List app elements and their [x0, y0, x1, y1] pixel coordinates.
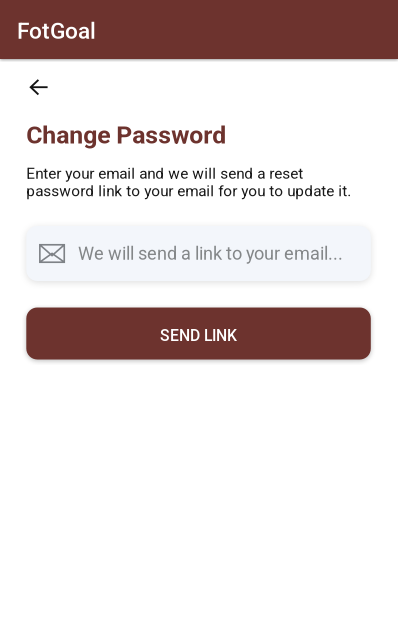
staticText: Enter your email and we will send a rese… [26, 164, 351, 200]
button[interactable]: Back [26, 59, 62, 106]
staticText: SEND LINK [160, 326, 237, 345]
staticText: FotGoal [17, 18, 96, 44]
button[interactable]: SEND LINK [26, 307, 371, 359]
staticText: Change Password [26, 120, 226, 149]
staticText: We will send a link to your email... [78, 243, 343, 264]
